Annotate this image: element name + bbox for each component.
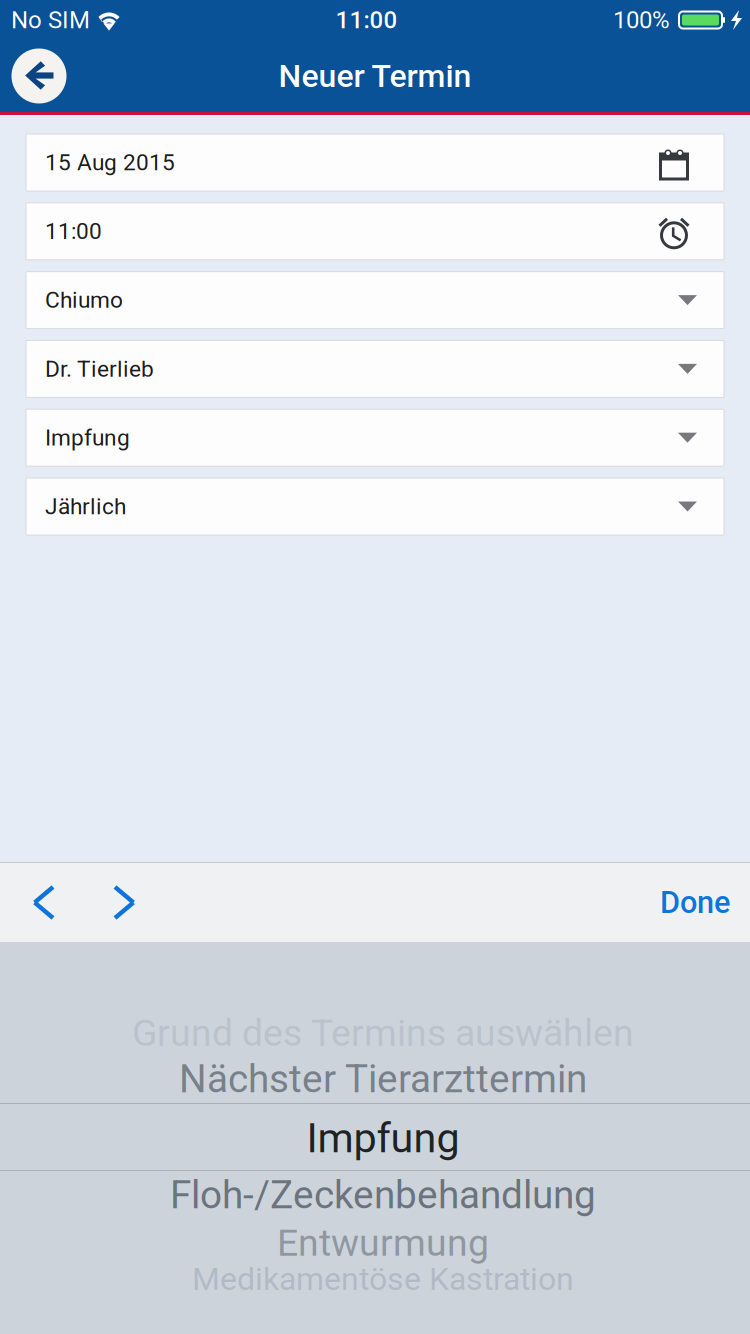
staticText: Entwurmung (277, 1221, 489, 1265)
staticText: 100% (613, 6, 670, 34)
staticText: Chiumo (45, 287, 123, 313)
staticText: Medikamentöse Kastration (192, 1260, 574, 1298)
button[interactable]: 15 Aug 2015 (26, 134, 724, 191)
button[interactable]: Back (0, 40, 78, 112)
staticText: 11:00 (45, 218, 102, 245)
staticText: No SIM (11, 6, 90, 34)
button[interactable]: Jährlich (26, 478, 724, 535)
staticText: 11:00 (335, 6, 397, 34)
staticText: Floh-/Zeckenbehandlung (170, 1172, 596, 1218)
staticText: Jährlich (45, 493, 126, 520)
staticText: 15 Aug 2015 (45, 149, 175, 176)
staticText: Impfung (306, 1114, 459, 1162)
staticText: Done (660, 884, 730, 920)
button[interactable]: 11:00 (26, 203, 724, 260)
button[interactable]: Chiumo (26, 272, 724, 329)
button[interactable]: Next field (86, 863, 164, 942)
staticText: Neuer Termin (278, 57, 471, 95)
staticText: Grund des Termins auswählen (132, 1011, 634, 1055)
staticText: Dr. Tierlieb (45, 356, 154, 382)
button[interactable]: Dr. Tierlieb (26, 340, 724, 397)
button[interactable]: Impfung (26, 409, 724, 466)
button[interactable]: Done (640, 863, 750, 942)
staticText: Nächster Tierarzttermin (179, 1056, 587, 1102)
staticText: Impfung (45, 424, 130, 451)
button[interactable]: Previous field (0, 863, 86, 942)
